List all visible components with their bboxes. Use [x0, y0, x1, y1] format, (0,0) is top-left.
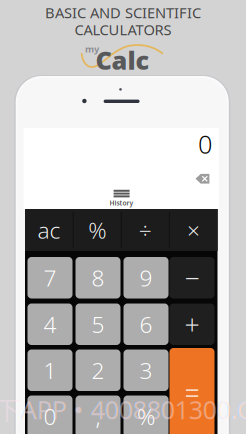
button[interactable]: 9 [123, 257, 168, 298]
button[interactable]: 8 [75, 257, 120, 298]
staticText: Calc [95, 43, 149, 77]
button[interactable]: 1 [27, 349, 72, 391]
staticText: 3 [139, 355, 152, 385]
staticText: 0 [198, 127, 212, 161]
staticText: CALCULATORS [74, 20, 171, 39]
staticText: 9 [139, 263, 152, 293]
staticText: 0 [43, 401, 56, 431]
staticText: 4 [43, 309, 56, 339]
button[interactable]: 7 [27, 257, 72, 298]
button[interactable]: − [169, 257, 214, 298]
staticText: + [184, 306, 199, 342]
staticText: ac [38, 215, 61, 245]
button[interactable]: % [123, 395, 168, 434]
staticText: 1 [43, 355, 56, 385]
staticText: − [184, 260, 199, 295]
button[interactable]: 3 [123, 349, 168, 391]
staticText: × [187, 215, 200, 245]
staticText: 易下APP • 4008801300.COM [0, 393, 246, 426]
staticText: , [95, 401, 100, 431]
staticText: my [85, 43, 99, 55]
staticText: = [184, 375, 199, 411]
button[interactable]: × [169, 209, 217, 251]
button[interactable]: + [169, 303, 214, 345]
staticText: 8 [91, 263, 104, 293]
button[interactable]: History [105, 189, 139, 209]
button[interactable]: = [169, 348, 214, 434]
button[interactable]: ÷ [121, 209, 169, 251]
staticText: ÷ [139, 215, 152, 245]
staticText: BASIC AND SCIENTIFIC [45, 3, 201, 22]
staticText: % [137, 401, 155, 431]
staticText: History [110, 199, 134, 207]
button[interactable]: 6 [123, 303, 168, 345]
button[interactable]: , [75, 395, 120, 434]
button[interactable]: Delete [192, 170, 214, 188]
button[interactable]: 5 [75, 303, 120, 345]
button[interactable]: 4 [27, 303, 72, 345]
button[interactable]: % [73, 209, 121, 251]
button[interactable]: 2 [75, 349, 120, 391]
staticText: 2 [91, 355, 104, 385]
button[interactable]: 0 [27, 395, 72, 434]
staticText: 6 [139, 309, 152, 339]
staticText: 5 [91, 309, 104, 339]
staticText: % [88, 215, 106, 245]
button[interactable]: ac [25, 209, 73, 251]
staticText: 7 [43, 263, 56, 293]
